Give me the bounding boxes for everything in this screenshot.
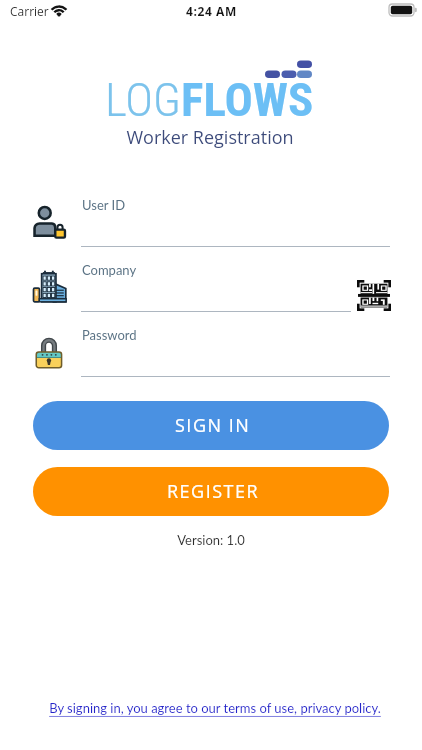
staticText: LOG — [105, 72, 181, 127]
staticText: SIGN IN — [175, 413, 251, 438]
staticText: Version: 1.0 — [0, 532, 422, 548]
staticText: REGISTER — [167, 479, 260, 504]
staticText: Password — [82, 327, 137, 343]
staticText: FLOWS — [181, 72, 314, 127]
staticText: User ID — [82, 197, 126, 213]
button[interactable]: REGISTER — [33, 467, 389, 516]
staticText: 4:24 AM — [186, 3, 237, 19]
button[interactable]: Scan QR code — [356, 278, 392, 312]
staticText: Carrier — [10, 3, 49, 19]
button[interactable]: By signing in, you agree to our terms of… — [4, 700, 422, 716]
staticText: Worker Registration — [0, 125, 421, 150]
button[interactable]: SIGN IN — [33, 401, 389, 450]
staticText: Company — [82, 262, 137, 278]
